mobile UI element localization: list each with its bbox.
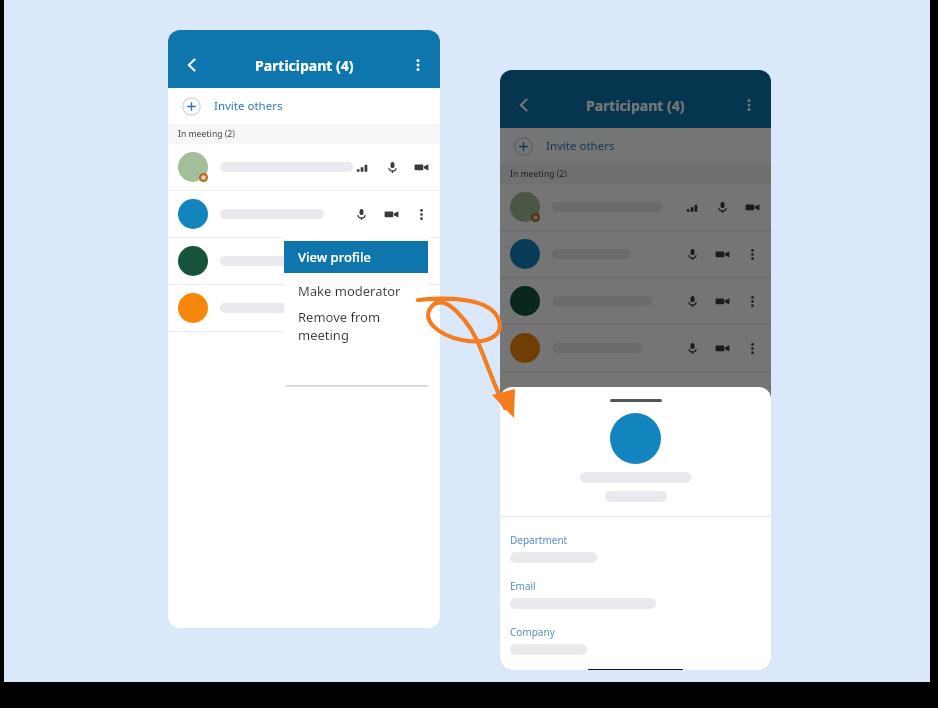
button[interactable]: Make moderator bbox=[284, 273, 428, 308]
button[interactable]: Microphone bbox=[683, 339, 701, 357]
button[interactable]: Microphone bbox=[168, 191, 440, 237]
button[interactable]: Microphone bbox=[383, 158, 401, 176]
staticText: Email bbox=[510, 579, 536, 593]
button[interactable]: More options bbox=[731, 87, 767, 123]
button[interactable]: View profile bbox=[284, 241, 428, 273]
button[interactable]: Camera bbox=[713, 292, 731, 310]
staticText: Make moderator bbox=[298, 282, 401, 300]
button[interactable]: Camera bbox=[713, 339, 731, 357]
staticText: Participant (4) bbox=[586, 96, 685, 115]
staticText: Department bbox=[510, 533, 568, 547]
button[interactable]: Signal strength bbox=[168, 144, 440, 190]
button[interactable] bbox=[168, 285, 440, 331]
staticText: Participant (4) bbox=[255, 56, 354, 75]
button[interactable]: Microphone bbox=[500, 231, 771, 277]
staticText: Invite others bbox=[214, 98, 283, 114]
button[interactable]: Invite others bbox=[168, 88, 440, 124]
button[interactable]: Microphone bbox=[500, 325, 771, 371]
button[interactable] bbox=[168, 238, 440, 284]
button[interactable]: Signal strength bbox=[353, 158, 371, 176]
button[interactable]: Back bbox=[174, 47, 210, 83]
button[interactable]: Camera bbox=[713, 245, 731, 263]
staticText: In meeting (2) bbox=[510, 168, 567, 180]
button[interactable]: More options bbox=[412, 205, 430, 223]
button[interactable]: More options bbox=[743, 245, 761, 263]
staticText: View profile bbox=[298, 248, 371, 266]
button[interactable]: Invite others bbox=[500, 128, 771, 164]
button[interactable]: Microphone bbox=[352, 205, 370, 223]
button[interactable]: Microphone bbox=[683, 292, 701, 310]
staticText: Company bbox=[510, 625, 555, 639]
button[interactable]: Camera bbox=[743, 198, 761, 216]
button[interactable]: Camera bbox=[413, 158, 430, 176]
button[interactable]: More options bbox=[743, 339, 761, 357]
button[interactable]: More options bbox=[400, 47, 436, 83]
button[interactable]: More options bbox=[743, 292, 761, 310]
button[interactable]: Signal strength bbox=[683, 198, 701, 216]
button[interactable]: Signal strength bbox=[500, 184, 771, 230]
button[interactable]: Back bbox=[506, 87, 542, 123]
button[interactable]: Camera bbox=[382, 205, 400, 223]
staticText: In meeting (2) bbox=[178, 128, 235, 140]
button[interactable]: Remove from meeting bbox=[284, 308, 428, 343]
button[interactable]: Microphone bbox=[500, 278, 771, 324]
staticText: Remove from meeting bbox=[298, 308, 428, 343]
button[interactable]: Microphone bbox=[713, 198, 731, 216]
button[interactable]: Microphone bbox=[683, 245, 701, 263]
staticText: Invite others bbox=[546, 138, 615, 154]
